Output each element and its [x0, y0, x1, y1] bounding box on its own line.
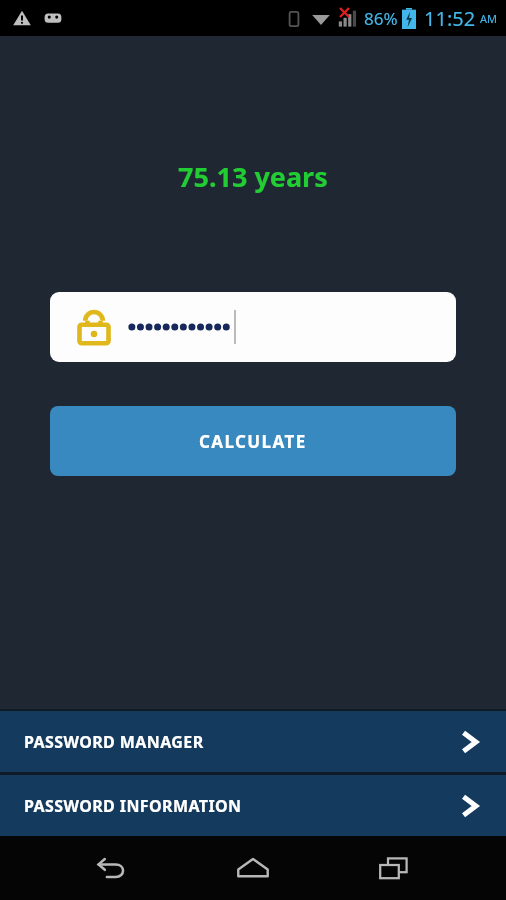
button[interactable]: Recent apps	[365, 839, 423, 897]
other: Open PASSWORD MANAGER	[452, 725, 486, 759]
other: Open PASSWORD INFORMATION	[452, 789, 486, 823]
staticText: 75.13 years	[178, 158, 328, 195]
button[interactable]: PASSWORD MANAGER	[0, 711, 506, 772]
staticText: PASSWORD INFORMATION	[24, 795, 242, 817]
button[interactable]: CALCULATE	[50, 406, 456, 476]
button[interactable]	[50, 292, 456, 362]
staticText: 86%	[364, 7, 398, 30]
button[interactable]: Back	[83, 839, 141, 897]
staticText: 11:52	[424, 5, 476, 32]
staticText: CALCULATE	[199, 430, 307, 453]
staticText: PASSWORD MANAGER	[24, 731, 204, 753]
button[interactable]: PASSWORD INFORMATION	[0, 775, 506, 836]
button[interactable]: Home	[224, 839, 282, 897]
staticText: AM	[480, 11, 498, 26]
